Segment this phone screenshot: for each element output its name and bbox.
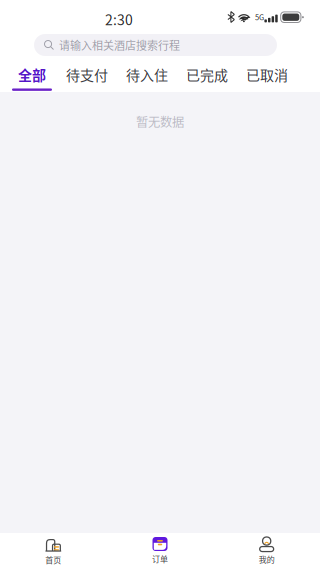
- staticText: 全部: [18, 64, 46, 84]
- button[interactable]: 待支付: [57, 63, 117, 92]
- staticText: 首页: [45, 554, 61, 566]
- button[interactable]: 我的: [213, 533, 320, 568]
- button[interactable]: 请输入相关酒店搜索行程: [34, 34, 277, 56]
- button[interactable]: 订单: [107, 533, 213, 568]
- staticText: 已完成: [186, 64, 228, 84]
- button[interactable]: 已取消: [237, 63, 297, 92]
- staticText: 已取消: [246, 64, 288, 84]
- button[interactable]: 已完成: [177, 63, 237, 92]
- button[interactable]: 待入住: [117, 63, 177, 92]
- staticText: 待入住: [126, 64, 168, 84]
- staticText: 2:30: [105, 9, 133, 29]
- button[interactable]: 首页: [0, 533, 107, 568]
- staticText: 请输入相关酒店搜索行程: [59, 37, 180, 53]
- staticText: 订单: [152, 553, 168, 565]
- staticText: 5G: [255, 12, 264, 22]
- staticText: 暂无数据: [136, 112, 184, 130]
- button[interactable]: 全部: [7, 63, 57, 92]
- staticText: 待支付: [66, 64, 108, 84]
- staticText: 我的: [259, 553, 275, 565]
